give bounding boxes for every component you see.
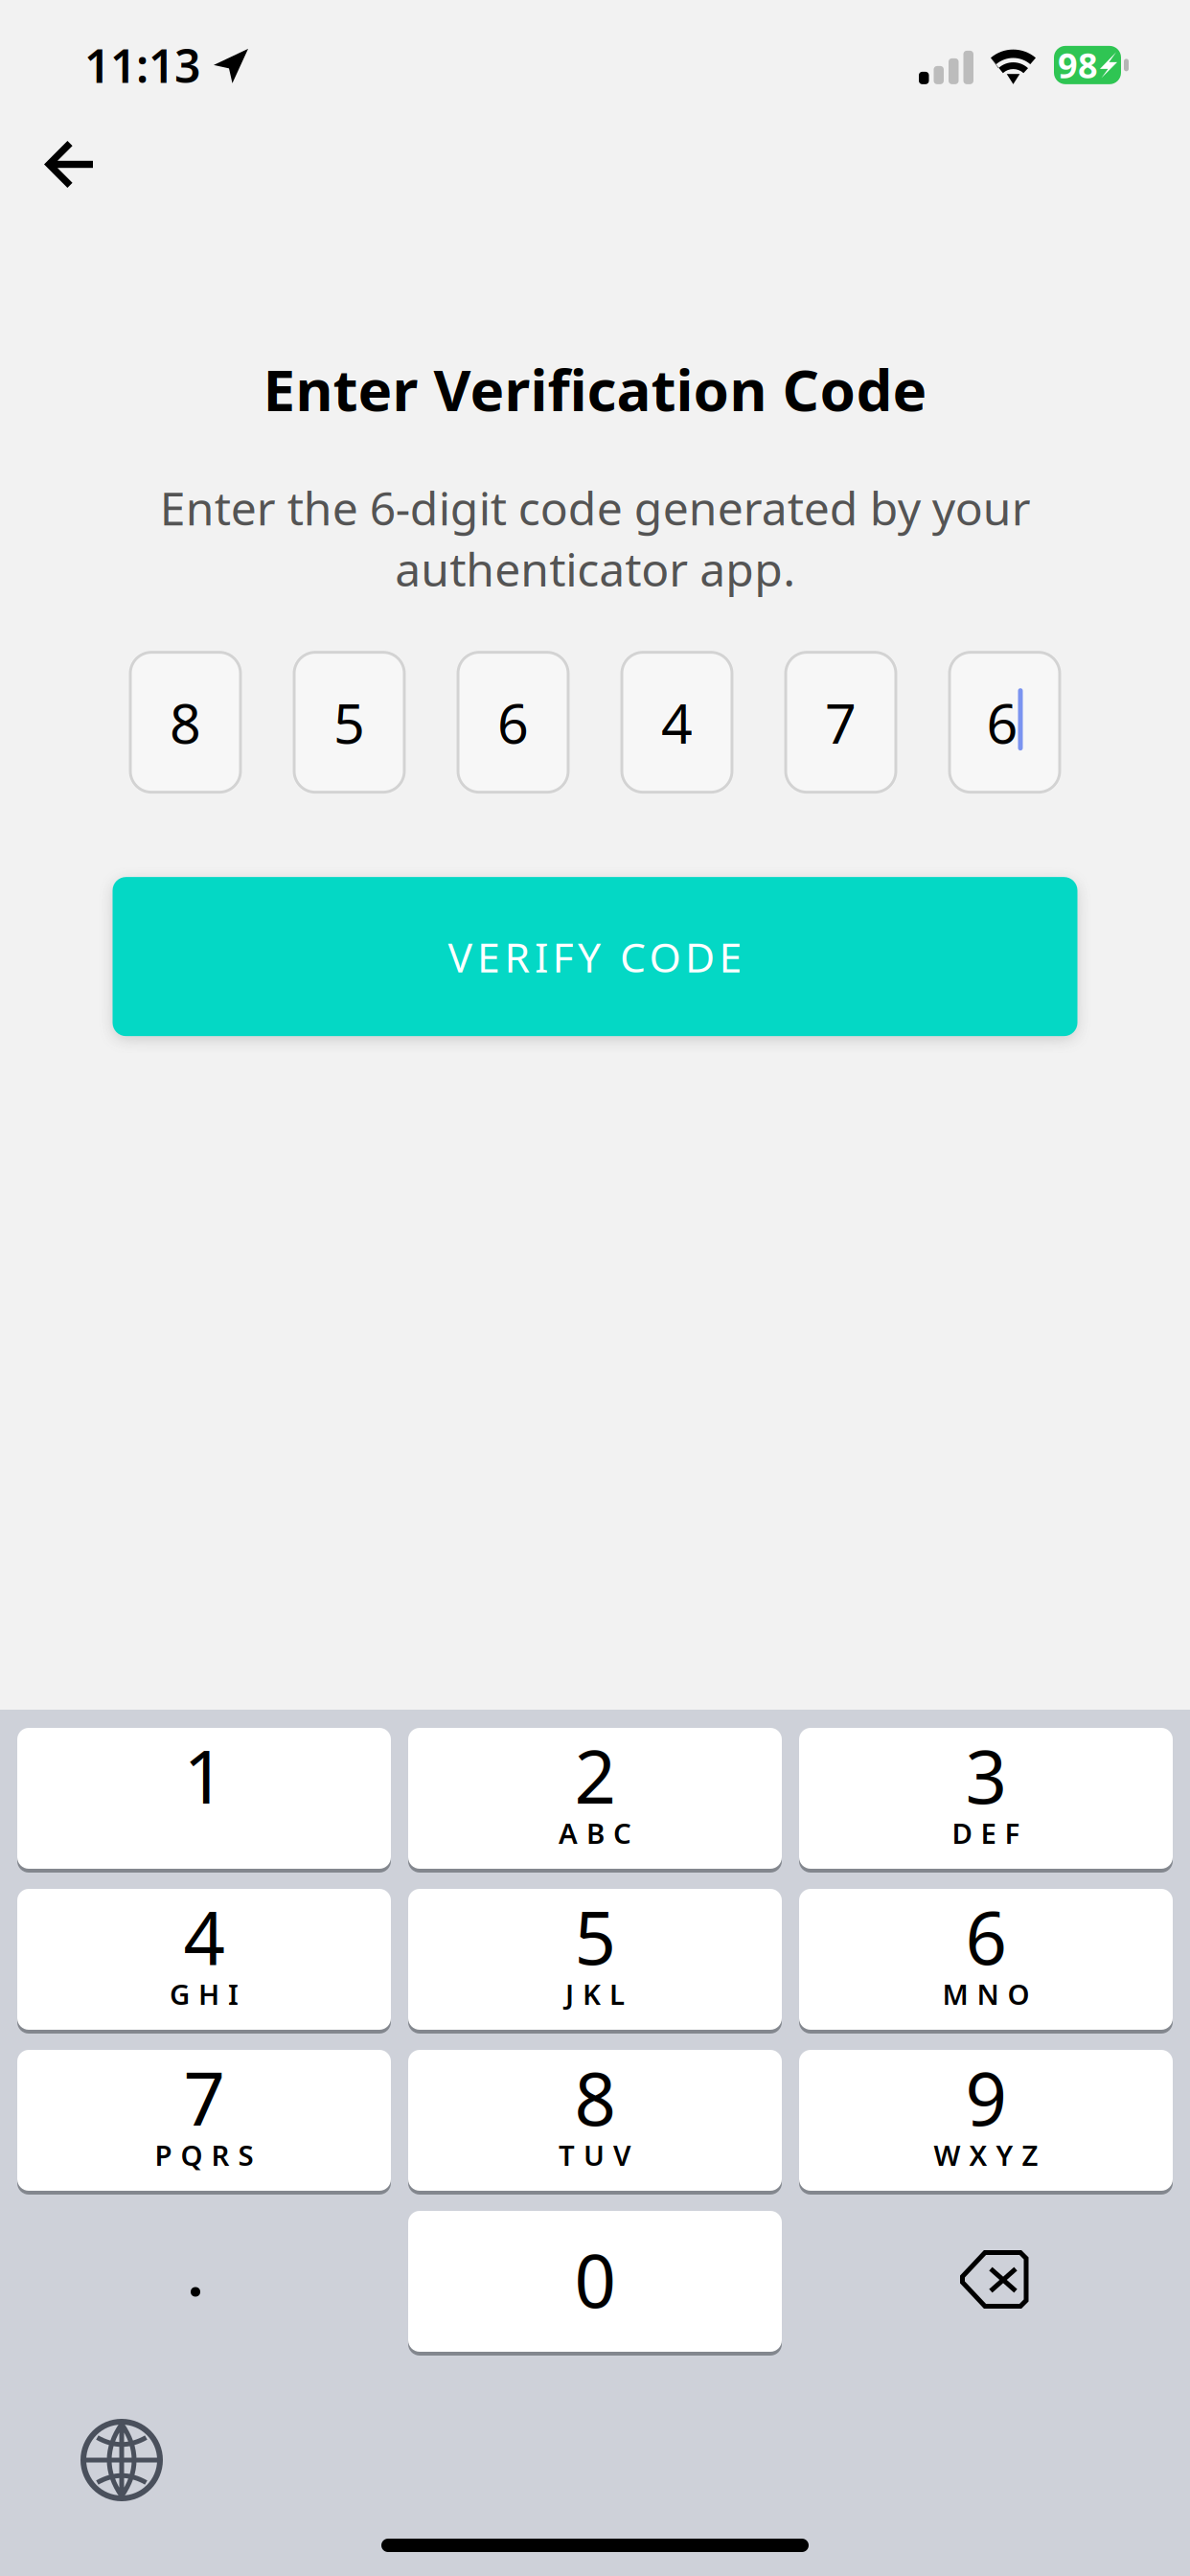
button[interactable]: Decimal point (17, 2211, 391, 2354)
staticText: 6 (965, 1888, 1007, 1985)
staticText: WXYZ (934, 2136, 1038, 2173)
button[interactable]: Next keyboard (83, 2422, 160, 2498)
button[interactable]: VERIFY CODE (113, 877, 1077, 1036)
staticText: GHI (170, 1975, 239, 2012)
button[interactable]: 1 (17, 1728, 391, 1871)
staticText: 9 (965, 2049, 1007, 2146)
staticText: JKL (565, 1975, 625, 2012)
staticText: 6 (986, 686, 1018, 759)
staticText: 7 (183, 2049, 225, 2146)
staticText: 2 (574, 1727, 616, 1824)
button[interactable]: 6 (799, 1889, 1173, 2032)
staticText: 5 (574, 1888, 616, 1985)
staticText: 11:13 (84, 34, 200, 96)
staticText: 3 (965, 1727, 1007, 1824)
staticText: ABC (559, 1814, 631, 1851)
staticText: 0 (574, 2231, 616, 2328)
button[interactable]: 3 (799, 1728, 1173, 1871)
staticText: 4 (183, 1888, 225, 1985)
staticText: DEF (952, 1814, 1020, 1851)
staticText: 8 (574, 2049, 616, 2146)
button[interactable]: 7 (17, 2050, 391, 2193)
staticText: 98 (1058, 42, 1098, 88)
button[interactable]: Back (0, 109, 118, 205)
button[interactable]: 0 (408, 2211, 782, 2354)
staticText: 5 (333, 686, 365, 759)
button[interactable]: 4 (17, 1889, 391, 2032)
staticText: TUV (559, 2136, 631, 2173)
button[interactable]: 2 (408, 1728, 782, 1871)
button[interactable]: 8 (408, 2050, 782, 2193)
button[interactable]: Delete (799, 2211, 1173, 2354)
staticText: 8 (170, 686, 201, 759)
button[interactable]: 9 (799, 2050, 1173, 2193)
staticText: Enter the 6-digit code generated by your… (160, 477, 1030, 599)
staticText: VERIFY CODE (448, 929, 742, 984)
staticText: MNO (942, 1975, 1030, 2012)
staticText: 7 (825, 686, 857, 759)
staticText: 6 (497, 686, 529, 759)
staticText: Enter Verification Code (263, 351, 927, 427)
staticText: PQRS (155, 2136, 253, 2173)
staticText: 1 (183, 1727, 225, 1824)
button[interactable]: 5 (408, 1889, 782, 2032)
staticText: 4 (661, 686, 693, 759)
